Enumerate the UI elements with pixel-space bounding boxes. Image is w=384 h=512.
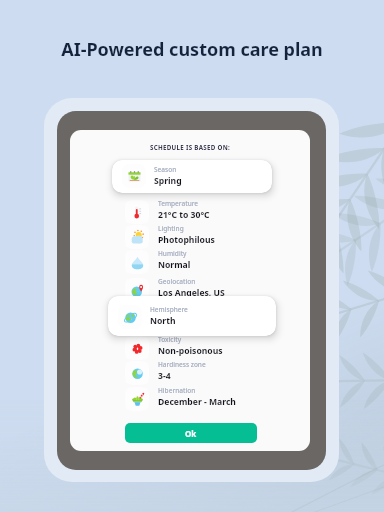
staticText: Hemisphere [150, 305, 188, 314]
staticText: Hardiness zone [158, 360, 206, 369]
button[interactable]: Hibernation [125, 387, 277, 412]
staticText: Normal [158, 259, 191, 271]
staticText: Humidity [158, 249, 187, 258]
button[interactable]: Humidity [125, 250, 277, 275]
staticText: North [150, 315, 176, 327]
staticText: 21°C to 30°C [158, 209, 210, 221]
staticText: Geolocation [158, 277, 196, 286]
button[interactable]: Hemisphere [108, 296, 276, 336]
button[interactable]: Ok [125, 423, 257, 443]
staticText: Los Angeles, US [158, 287, 225, 299]
button[interactable]: Season [112, 160, 272, 193]
staticText: December - March [158, 396, 236, 408]
button[interactable]: Lighting [125, 225, 277, 250]
staticText: AI-Powered custom care plan [0, 37, 384, 62]
button[interactable]: Hardiness zone [125, 361, 277, 386]
staticText: SCHEDULE IS BASED ON: [70, 143, 310, 151]
staticText: Ok [185, 428, 197, 439]
button[interactable]: Geolocation [125, 278, 277, 303]
staticText: Season [154, 165, 177, 174]
button[interactable]: Toxicity [125, 336, 277, 361]
staticText: Spring [154, 175, 182, 187]
staticText: Photophilous [158, 234, 215, 246]
staticText: 3-4 [158, 370, 171, 382]
staticText: Temperature [158, 199, 199, 208]
staticText: Hibernation [158, 386, 196, 395]
staticText: Lighting [158, 224, 184, 233]
button[interactable]: Temperature [125, 200, 277, 225]
staticText: Toxicity [158, 335, 182, 344]
staticText: Non-poisonous [158, 345, 223, 357]
